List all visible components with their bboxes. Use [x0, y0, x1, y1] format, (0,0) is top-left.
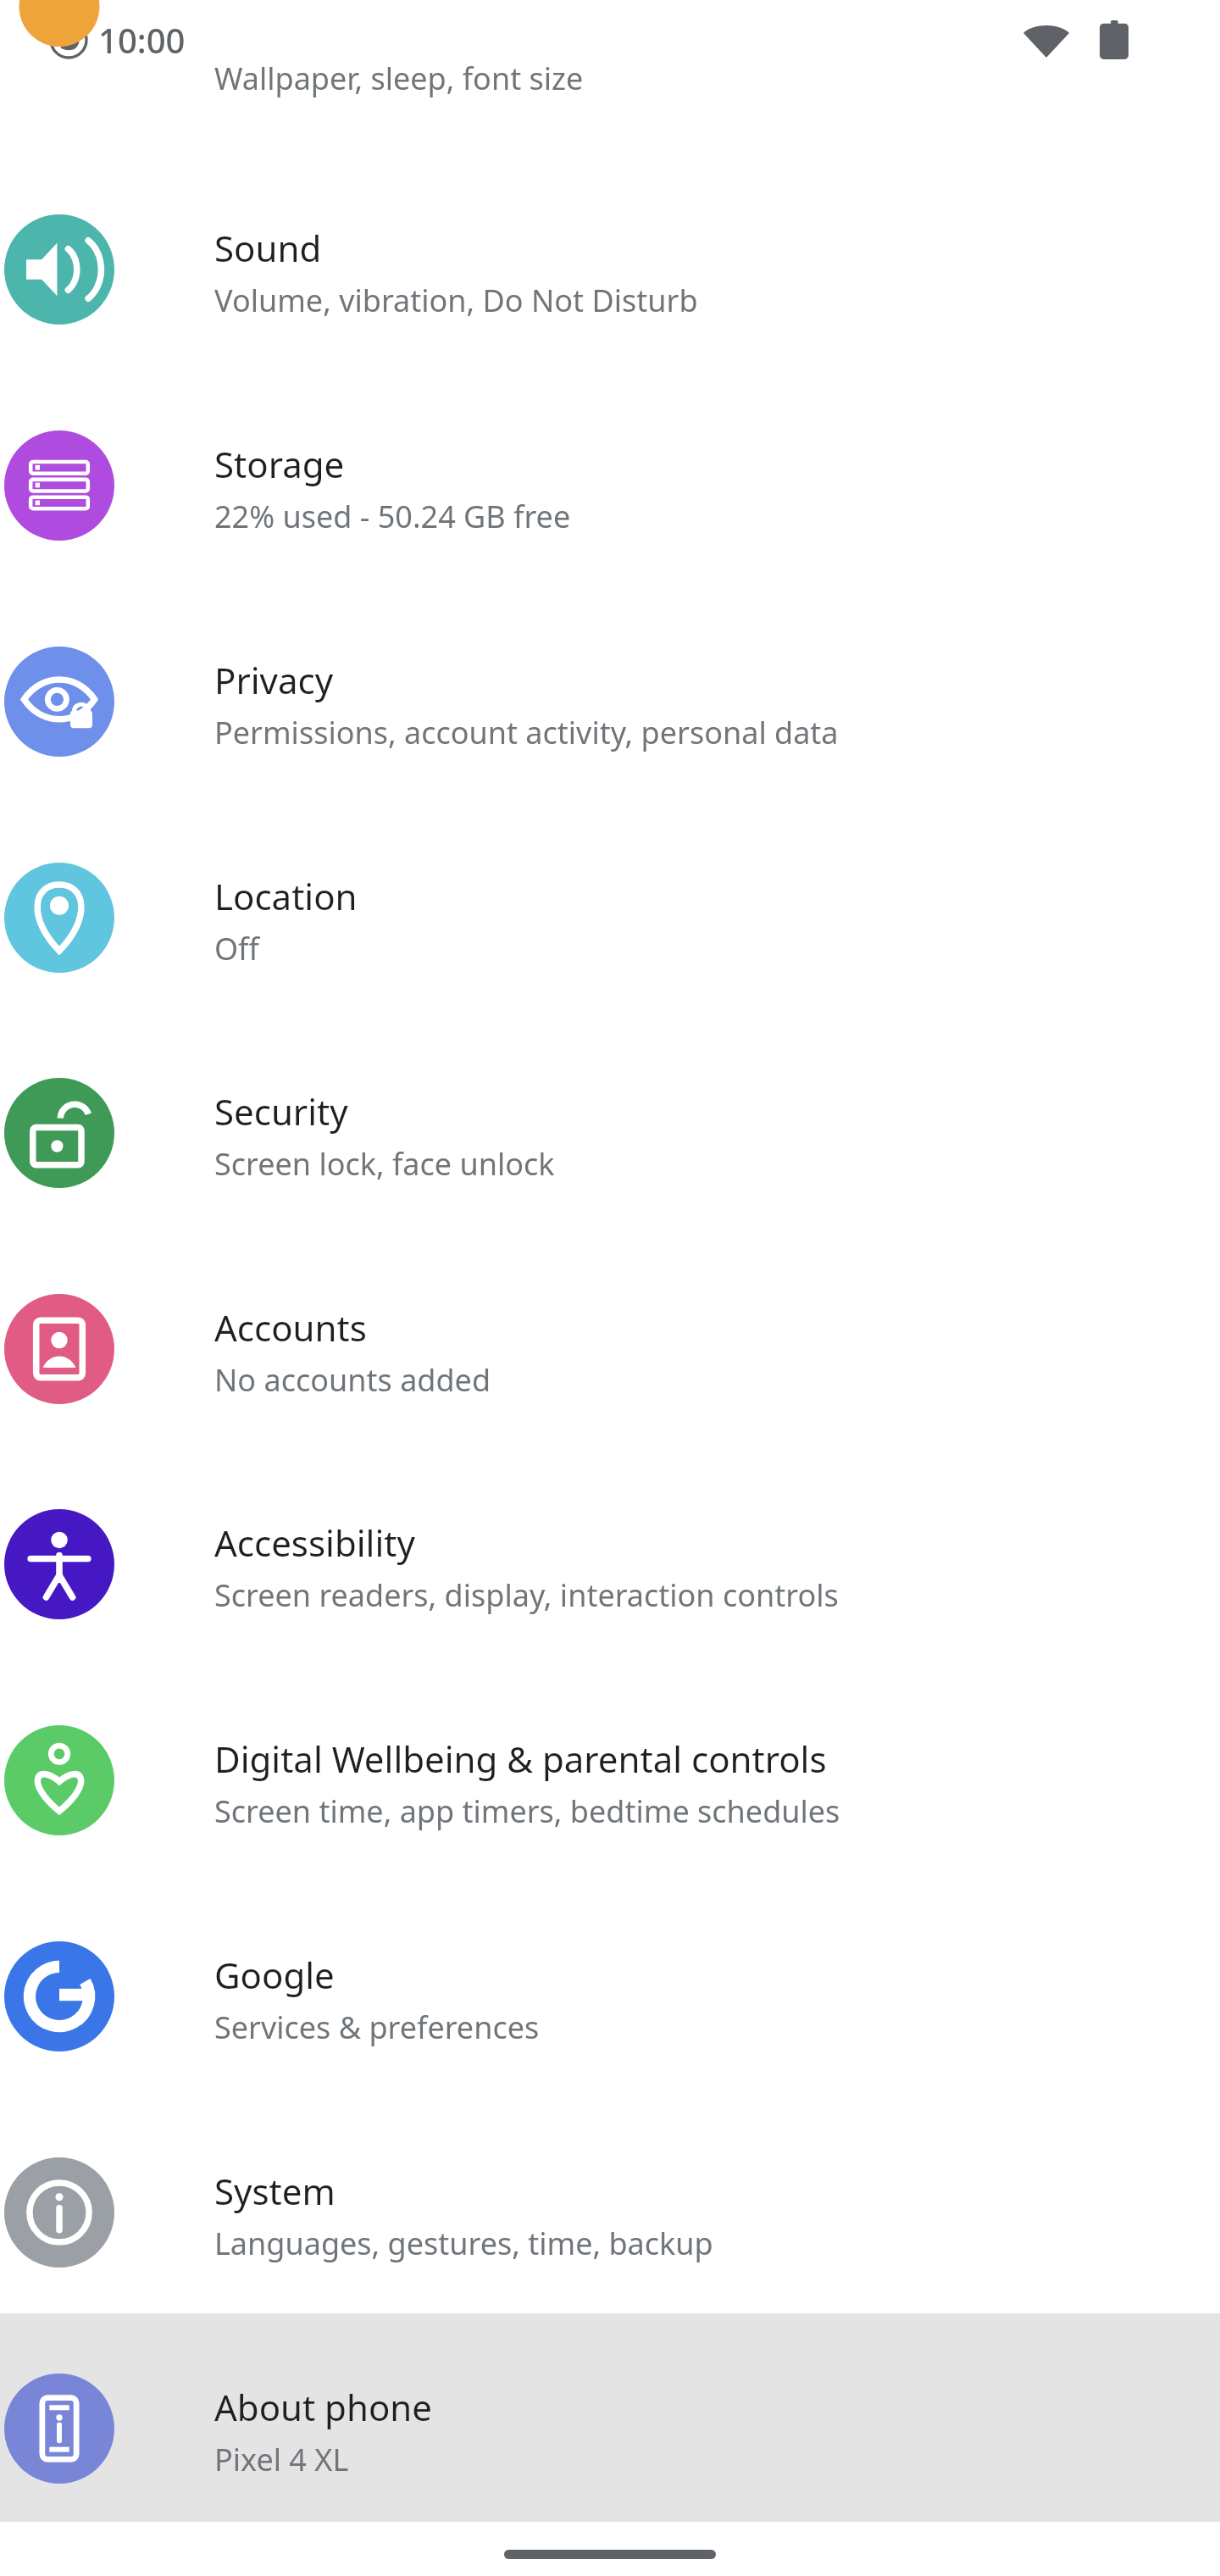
staticText: Digital Wellbeing & parental controls	[214, 1735, 827, 1783]
staticText: Privacy	[214, 656, 334, 704]
staticText: Storage	[214, 440, 345, 488]
staticText: Pixel 4 XL	[214, 2439, 349, 2480]
staticText: Languages, gestures, time, backup	[214, 2223, 713, 2264]
button[interactable]: Sound	[0, 175, 1220, 364]
other: Wi-Fi signal	[1023, 22, 1069, 56]
staticText: Wallpaper, sleep, font size	[214, 58, 584, 99]
staticText: 10:00	[98, 17, 186, 63]
staticText: 22% used - 50.24 GB free	[214, 496, 571, 537]
staticText: Off	[214, 928, 259, 969]
staticText: Services & preferences	[214, 2007, 540, 2048]
button[interactable]: About phone	[0, 2334, 1220, 2523]
staticText: System	[214, 2167, 335, 2215]
button[interactable]: Security	[0, 1038, 1220, 1228]
button[interactable]: Digital Wellbeing & parental controls	[0, 1685, 1220, 1875]
button[interactable]: Location	[0, 823, 1220, 1013]
staticText: Sound	[214, 224, 322, 272]
staticText: Volume, vibration, Do Not Disturb	[214, 280, 698, 321]
button[interactable]: Accounts	[0, 1254, 1220, 1444]
staticText: No accounts added	[214, 1359, 491, 1401]
button[interactable]: Accessibility	[0, 1469, 1220, 1659]
button[interactable]: Wallpaper, sleep, font size	[0, 0, 1220, 80]
staticText: About phone	[214, 2383, 432, 2431]
button[interactable]: Privacy	[0, 607, 1220, 797]
other: Battery	[1100, 20, 1128, 59]
staticText: Security	[214, 1087, 348, 1135]
staticText: Location	[214, 872, 358, 920]
staticText: Permissions, account activity, personal …	[214, 712, 839, 753]
staticText: Screen lock, face unlock	[214, 1143, 555, 1185]
staticText: Accessibility	[214, 1518, 415, 1567]
button[interactable]: Google	[0, 1901, 1220, 2091]
staticText: Accounts	[214, 1303, 367, 1352]
staticText: Screen readers, display, interaction con…	[214, 1574, 839, 1616]
button[interactable]	[0, 2313, 1220, 2522]
staticText: Google	[214, 1951, 335, 1999]
button[interactable]: Storage	[0, 391, 1220, 580]
staticText: Screen time, app timers, bedtime schedul…	[214, 1790, 840, 1832]
button[interactable]: System	[0, 2118, 1220, 2307]
